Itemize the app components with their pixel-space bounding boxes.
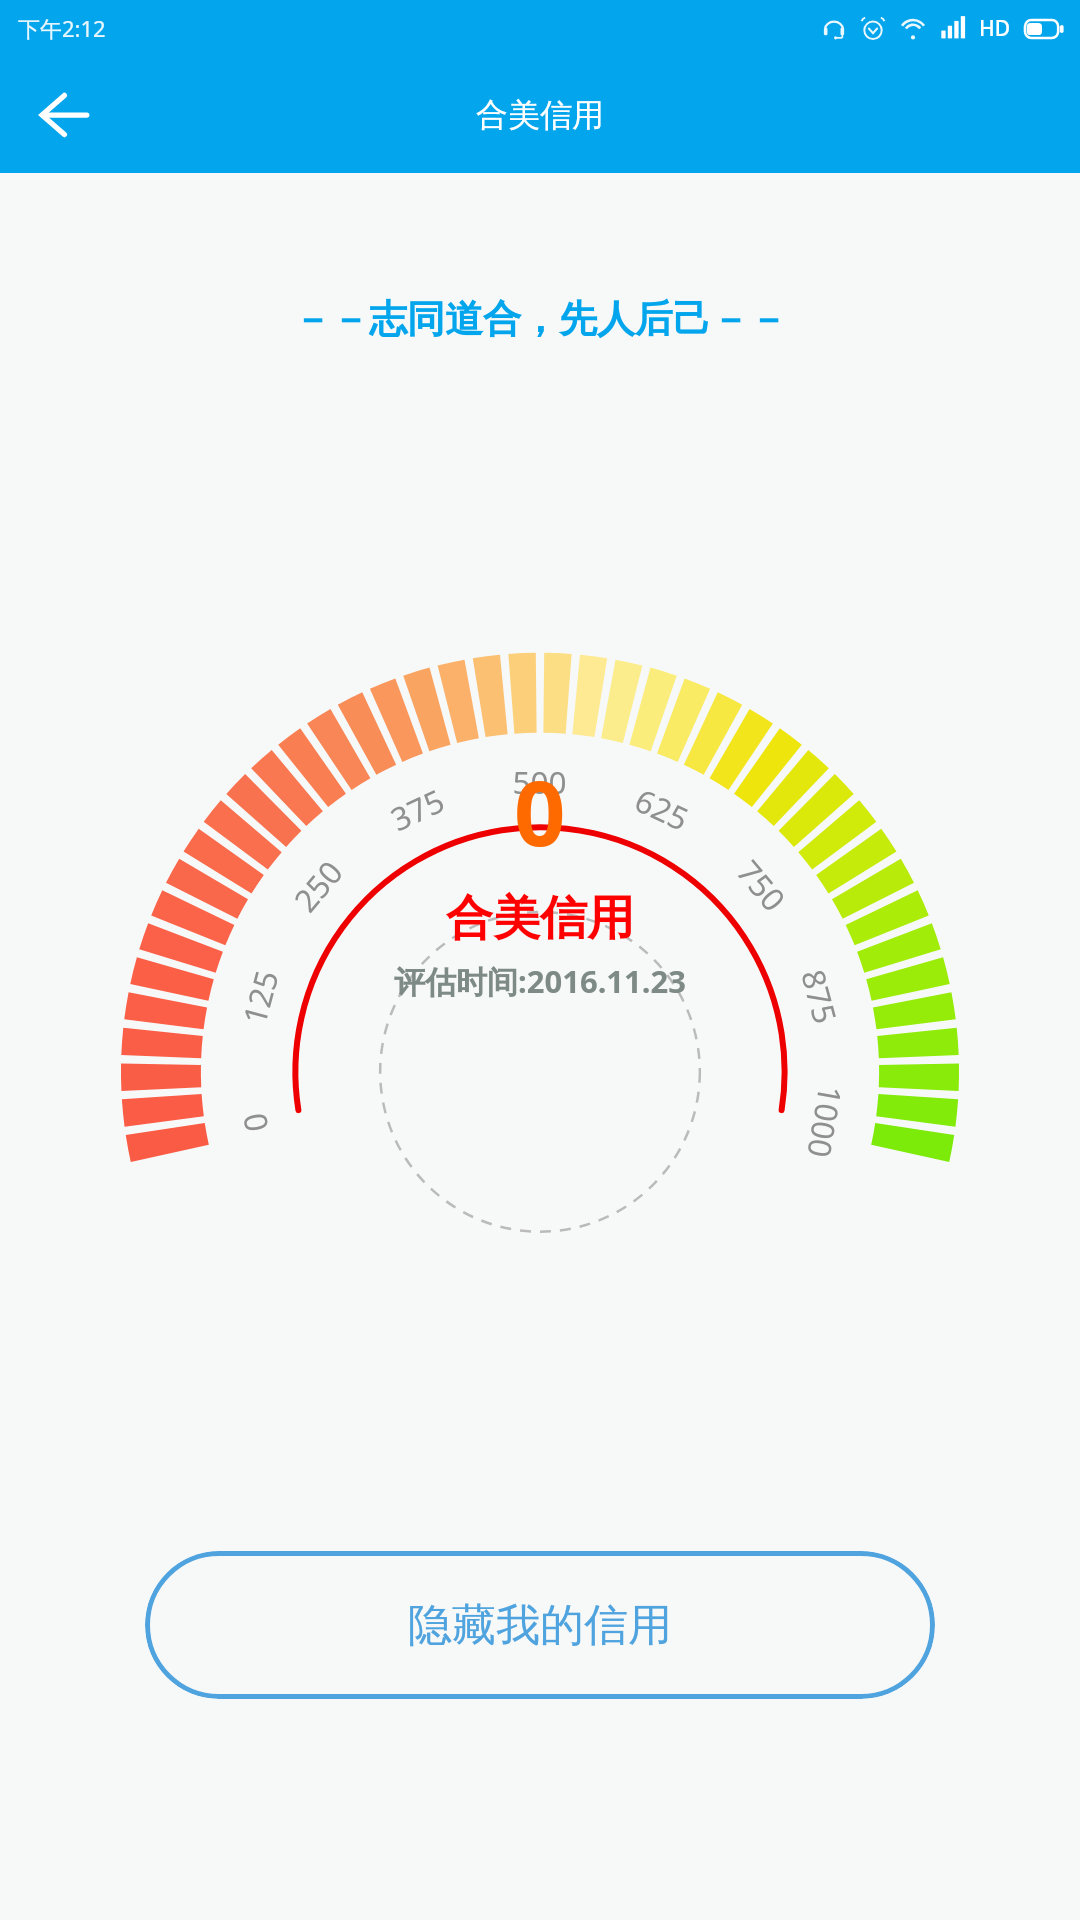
staticText: 下午2:12: [18, 13, 106, 43]
staticText: 合美信用: [476, 95, 604, 135]
staticText: 隐藏我的信用: [408, 1598, 672, 1653]
staticText: －－志同道合，先人后己－－: [293, 295, 787, 343]
staticText: 合美信用: [446, 889, 634, 948]
staticText: 评估时间:2016.11.23: [394, 960, 686, 1002]
staticText: HD: [979, 14, 1011, 43]
button[interactable]: 隐藏我的信用: [145, 1551, 935, 1699]
staticText: 0: [514, 750, 566, 873]
button[interactable]: Back: [28, 80, 98, 150]
